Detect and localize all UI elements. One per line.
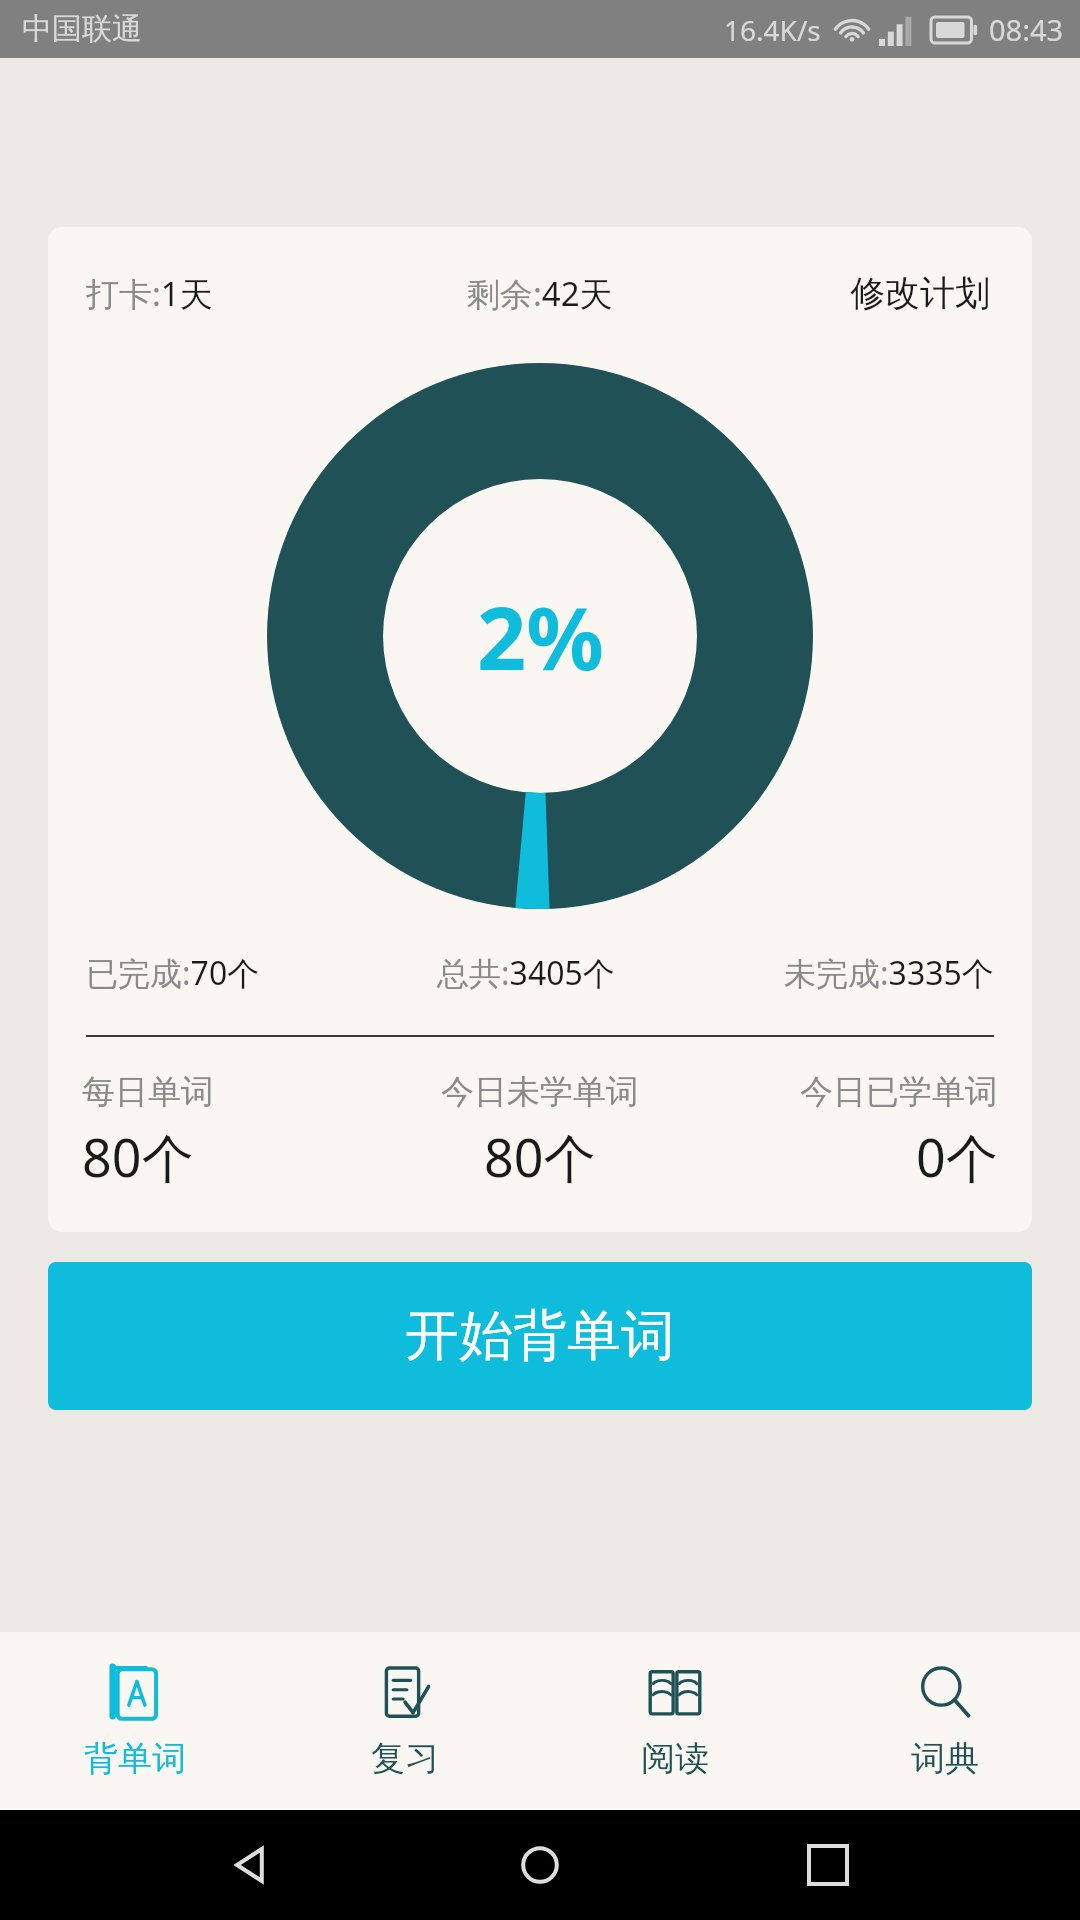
staticText: 词典 bbox=[911, 1737, 979, 1780]
button[interactable]: 复习 bbox=[270, 1632, 540, 1810]
other: 背单词 bbox=[104, 1663, 166, 1725]
staticText: 0个 bbox=[916, 1121, 998, 1192]
staticText: 总共:3405个 bbox=[437, 951, 615, 995]
button[interactable]: Home bbox=[505, 1830, 575, 1900]
staticText: 80个 bbox=[82, 1121, 194, 1192]
button[interactable]: 阅读 bbox=[540, 1632, 810, 1810]
button[interactable]: Recents bbox=[793, 1830, 863, 1900]
button[interactable]: 背单词 bbox=[0, 1632, 270, 1810]
staticText: 打卡:1天 bbox=[86, 271, 213, 316]
staticText: 今日未学单词 bbox=[441, 1071, 639, 1113]
button[interactable]: 修改计划 bbox=[846, 267, 994, 319]
staticText: 16.4K/s bbox=[724, 11, 821, 49]
button[interactable]: 开始背单词 bbox=[48, 1262, 1032, 1410]
staticText: 08:43 bbox=[989, 10, 1064, 49]
staticText: 开始背单词 bbox=[405, 1302, 675, 1370]
staticText: 今日已学单词 bbox=[800, 1071, 998, 1113]
staticText: 2% bbox=[477, 578, 604, 695]
staticText: 剩余:42天 bbox=[467, 271, 613, 316]
staticText: 阅读 bbox=[641, 1737, 709, 1780]
staticText: 复习 bbox=[371, 1737, 439, 1780]
button[interactable]: Back bbox=[218, 1830, 288, 1900]
staticText: 每日单词 bbox=[82, 1071, 214, 1113]
staticText: 未完成:3335个 bbox=[784, 951, 994, 995]
button[interactable]: 词典 bbox=[810, 1632, 1080, 1810]
staticText: 背单词 bbox=[84, 1737, 186, 1780]
other: 阅读 bbox=[644, 1663, 706, 1725]
staticText: 80个 bbox=[484, 1121, 596, 1192]
staticText: 已完成:70个 bbox=[86, 951, 260, 995]
other: 复习 bbox=[374, 1663, 436, 1725]
other: 词典 bbox=[914, 1663, 976, 1725]
staticText: 中国联通 bbox=[22, 10, 142, 48]
